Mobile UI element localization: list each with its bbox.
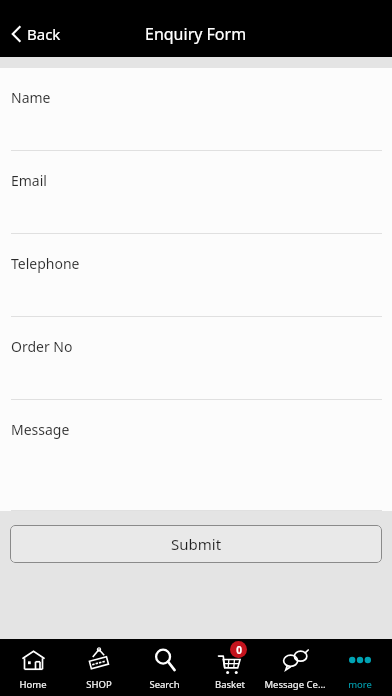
staticText: Name — [11, 88, 51, 107]
button[interactable]: Order No — [0, 317, 392, 400]
button[interactable]: more — [327, 639, 392, 696]
staticText: Message Ce... — [264, 678, 326, 691]
button[interactable]: Email — [0, 151, 392, 234]
button[interactable]: Message Ce... — [262, 639, 327, 696]
staticText: Search — [149, 678, 180, 691]
staticText: Basket — [215, 678, 245, 691]
staticText: Email — [11, 171, 47, 190]
button[interactable]: Name — [0, 68, 392, 151]
button[interactable]: Telephone — [0, 234, 392, 317]
staticText: Telephone — [11, 254, 80, 273]
button[interactable]: Submit — [10, 525, 382, 563]
button[interactable]: Home — [0, 639, 66, 696]
staticText: Message — [11, 420, 70, 439]
staticText: Enquiry Form — [145, 23, 247, 45]
button[interactable]: Back — [0, 18, 75, 50]
staticText: more — [348, 678, 372, 691]
button[interactable]: Basket — [197, 639, 262, 696]
staticText: Back — [27, 24, 61, 44]
staticText: Submit — [171, 534, 222, 554]
staticText: Home — [19, 678, 47, 691]
button[interactable]: Message — [0, 400, 392, 511]
staticText: Order No — [11, 337, 73, 356]
staticText: 0 — [236, 643, 242, 657]
button[interactable]: SHOP — [66, 639, 132, 696]
staticText: SHOP — [86, 678, 112, 691]
button[interactable]: Search — [132, 639, 197, 696]
